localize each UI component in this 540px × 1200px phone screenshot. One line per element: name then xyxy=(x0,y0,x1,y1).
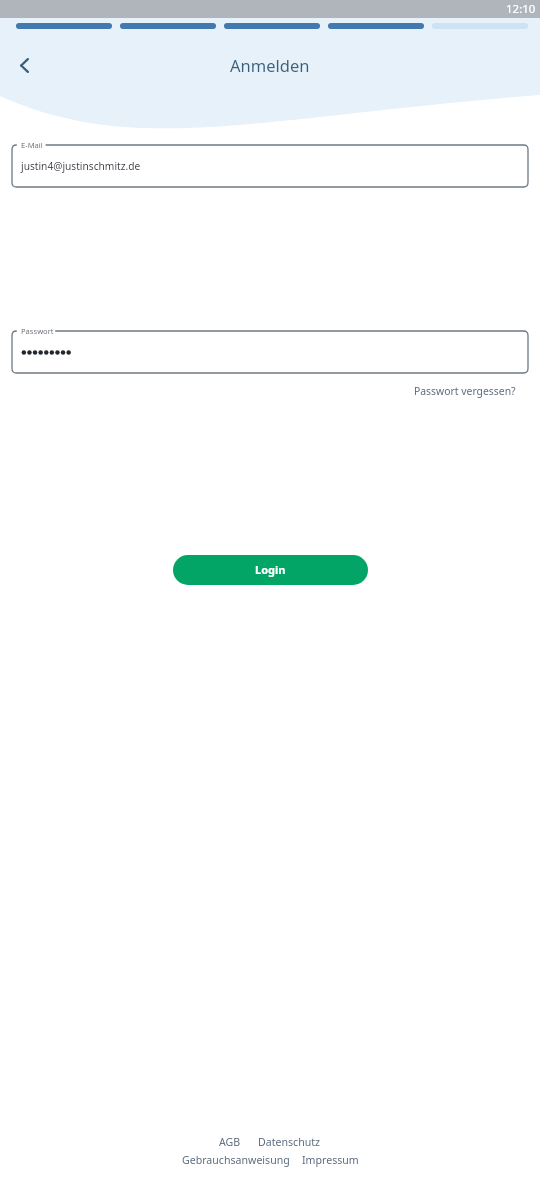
staticText: 12:10 xyxy=(506,1,536,17)
button[interactable]: E-Mail xyxy=(12,145,528,187)
button[interactable]: Zurück xyxy=(9,50,40,81)
button[interactable]: AGB xyxy=(219,1135,241,1149)
button[interactable]: Gebrauchsanweisung xyxy=(182,1153,290,1167)
staticText: Gebrauchsanweisung xyxy=(182,1153,290,1167)
button[interactable]: Datenschutz xyxy=(258,1135,321,1149)
staticText: Datenschutz xyxy=(258,1135,321,1149)
button[interactable]: Login xyxy=(173,555,368,585)
staticText: E-Mail xyxy=(21,140,43,150)
staticText: Passwort xyxy=(21,326,54,336)
staticText: Passwort vergessen? xyxy=(414,384,516,398)
staticText: Impressum xyxy=(302,1153,359,1167)
staticText: justin4@justinschmitz.de xyxy=(21,159,141,173)
staticText: Anmelden xyxy=(230,54,310,76)
button[interactable]: Passwort vergessen? xyxy=(414,384,516,398)
staticText: AGB xyxy=(219,1135,241,1149)
staticText: Login xyxy=(255,562,286,577)
button[interactable]: Passwort xyxy=(12,331,528,373)
button[interactable]: Impressum xyxy=(302,1153,359,1167)
